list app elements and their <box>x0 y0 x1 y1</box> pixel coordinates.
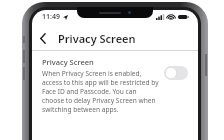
button[interactable]: Back <box>32 27 54 49</box>
staticText: 11:49 <box>42 12 60 22</box>
staticText: Privacy Screen <box>42 57 94 67</box>
button[interactable]: Privacy Screen toggle, off <box>164 66 188 80</box>
button[interactable]: Privacy Screen <box>32 51 198 122</box>
staticText: Privacy Screen <box>58 31 136 46</box>
staticText: When Privacy Screen is enabled, access t… <box>42 69 160 114</box>
